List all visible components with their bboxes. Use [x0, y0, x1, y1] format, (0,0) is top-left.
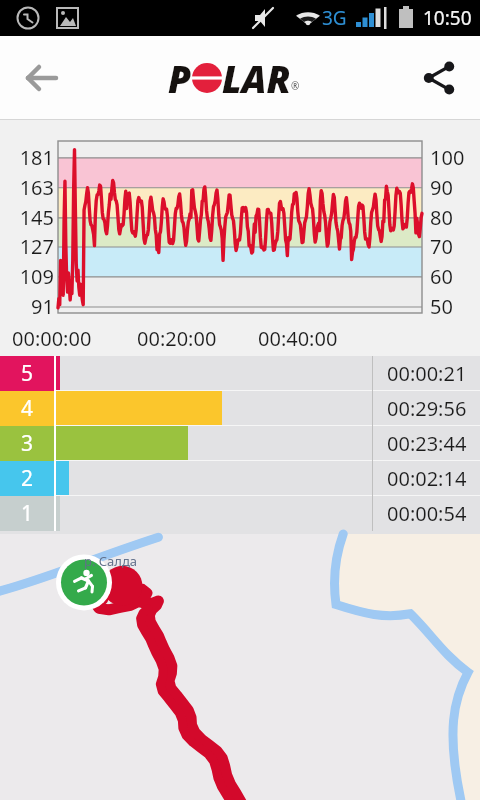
button[interactable]: 1 [0, 496, 480, 531]
staticText: 00:29:56 [387, 395, 467, 422]
staticText: 3G [322, 5, 347, 31]
staticText: 90 [430, 174, 476, 201]
staticText: 145 [8, 204, 54, 231]
staticText: 60 [430, 263, 476, 290]
staticText: 00:00:54 [387, 500, 467, 527]
button[interactable]: Route map [0, 534, 480, 800]
staticText: 00:40:00 [258, 325, 338, 352]
staticText: 5 [21, 359, 34, 388]
staticText: 10:50 [423, 5, 472, 31]
staticText: 91 [8, 293, 54, 320]
staticText: 3 [21, 429, 34, 458]
button[interactable]: Share [412, 51, 466, 105]
staticText: 100 [430, 144, 476, 171]
staticText: ® [291, 79, 300, 93]
staticText: LAR [222, 53, 291, 103]
staticText: 00:00:00 [12, 325, 92, 352]
staticText: 00:20:00 [137, 325, 217, 352]
staticText: 181 [8, 144, 54, 171]
staticText: 80 [430, 204, 476, 231]
staticText: 109 [8, 263, 54, 290]
staticText: 2 [21, 464, 34, 493]
button[interactable]: Back [14, 51, 68, 105]
staticText: 1 [21, 499, 34, 528]
staticText: 4 [21, 394, 34, 423]
staticText: 00:23:44 [387, 430, 467, 457]
button[interactable]: 2 [0, 461, 480, 496]
button[interactable]: 5 [0, 356, 480, 391]
staticText: р. Салда [84, 552, 138, 570]
staticText: 127 [8, 233, 54, 260]
staticText: P [168, 53, 192, 103]
staticText: 163 [8, 174, 54, 201]
staticText: 00:02:14 [387, 465, 467, 492]
staticText: 70 [430, 233, 476, 260]
staticText: 00:00:21 [387, 360, 467, 387]
button[interactable]: 4 [0, 391, 480, 426]
staticText: 50 [430, 293, 476, 320]
button[interactable]: 3 [0, 426, 480, 461]
